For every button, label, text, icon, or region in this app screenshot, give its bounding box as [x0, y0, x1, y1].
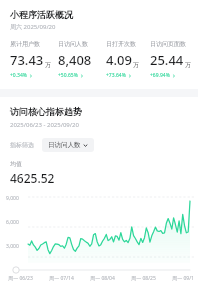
staticText: 日打开次数 — [106, 40, 136, 48]
staticText: 8,408 — [58, 51, 92, 69]
staticText: 9,000 — [6, 195, 19, 202]
staticText: 4625.52 — [10, 170, 55, 186]
staticText: 万 — [133, 61, 139, 69]
staticText: 累计用户数 — [10, 40, 40, 48]
button[interactable]: +0.34% — [10, 72, 33, 79]
button[interactable]: +73.64% — [106, 72, 132, 79]
staticText: +69.94% — [150, 72, 170, 79]
staticText: 73.43 — [10, 51, 44, 69]
staticText: 周一 08/04 — [90, 275, 115, 282]
button[interactable]: +69.94% — [150, 72, 176, 79]
staticText: 2025/06/23 - 2025/09/20 — [10, 121, 79, 129]
button[interactable]: Date range slider — [12, 266, 190, 274]
staticText: 指标筛选 — [10, 141, 34, 149]
staticText: 周一 07/14 — [49, 275, 74, 282]
button[interactable]: +50.65% — [58, 72, 84, 79]
staticText: +73.64% — [106, 72, 126, 79]
staticText: 4.09 — [106, 51, 132, 69]
staticText: 3,000 — [6, 243, 19, 250]
staticText: +50.65% — [58, 72, 78, 79]
staticText: 均值 — [10, 160, 22, 168]
staticText: 日访问页面数 — [150, 40, 186, 48]
staticText: 万 — [185, 61, 188, 69]
staticText: 小程序活跃概况 — [10, 9, 73, 20]
staticText: 周一 08/25 — [131, 275, 156, 282]
staticText: +0.34% — [10, 72, 27, 79]
staticText: 周一 06/23 — [8, 275, 33, 282]
button[interactable]: 日访问人数 — [42, 138, 94, 152]
staticText: 访问核心指标趋势 — [10, 106, 82, 117]
staticText: 25.44 — [150, 51, 184, 69]
staticText: 日访问人数 — [58, 40, 88, 48]
staticText: 万 — [45, 61, 51, 69]
staticText: 6,000 — [6, 219, 19, 226]
staticText: 日访问人数 — [48, 141, 81, 149]
staticText: 周六 2025/09/20 — [10, 23, 56, 31]
staticText: 周一 09/1 — [172, 275, 194, 282]
